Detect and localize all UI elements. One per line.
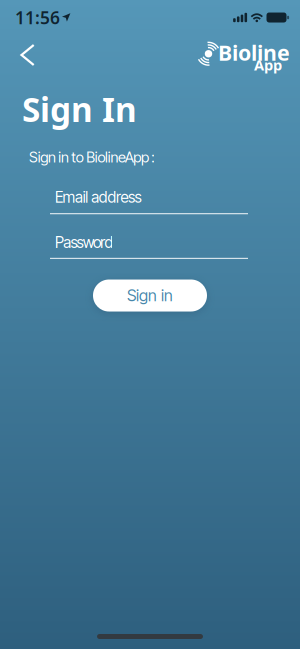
staticText: 11:56 (15, 6, 60, 29)
button[interactable]: Sign in (93, 279, 207, 311)
staticText: Sign in to BiolineApp : (29, 148, 154, 166)
staticText: App (254, 55, 282, 75)
staticText: Password (55, 233, 113, 252)
staticText: Sign in (127, 286, 173, 305)
button[interactable]: Email address (0, 188, 248, 214)
staticText: Sign In (22, 87, 137, 131)
staticText: Email address (55, 188, 142, 207)
button[interactable] (6, 33, 50, 77)
staticText: Bioline (218, 38, 290, 67)
button[interactable]: Password (0, 233, 248, 259)
